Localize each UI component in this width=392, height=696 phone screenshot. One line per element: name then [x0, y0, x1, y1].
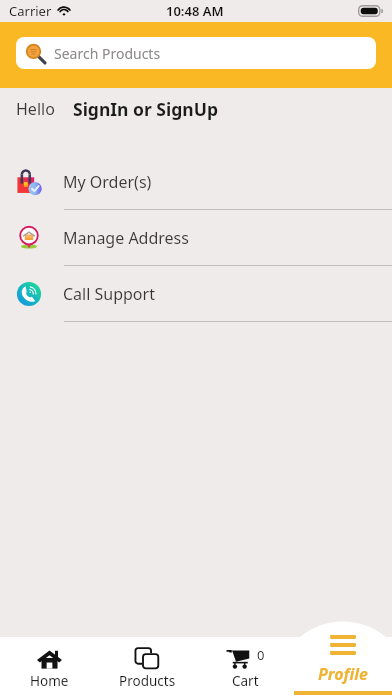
button[interactable]: Manage Address — [0, 210, 392, 266]
button[interactable]: SignIn or SignUp — [73, 97, 218, 121]
staticText: Call Support — [63, 283, 155, 305]
button[interactable]: Products — [98, 620, 196, 696]
staticText: Products — [119, 672, 176, 690]
staticText: Carrier — [9, 2, 52, 20]
staticText: Home — [30, 672, 69, 690]
button[interactable]: Cart — [196, 620, 294, 696]
staticText: 10:48 AM — [166, 2, 224, 20]
staticText: My Order(s) — [63, 171, 152, 193]
staticText: 0 — [257, 646, 265, 664]
button[interactable]: Search — [16, 37, 376, 69]
staticText: Search Products — [54, 44, 161, 63]
staticText: Hello — [16, 98, 55, 120]
button[interactable]: My Order(s) — [0, 154, 392, 210]
staticText: Cart — [232, 672, 259, 690]
staticText: Profile — [318, 663, 368, 685]
button[interactable]: Home — [0, 620, 98, 696]
button[interactable]: Call Support — [0, 266, 392, 322]
button[interactable]: Profile — [294, 620, 392, 696]
staticText: Manage Address — [63, 227, 189, 249]
other: Search — [25, 43, 46, 64]
